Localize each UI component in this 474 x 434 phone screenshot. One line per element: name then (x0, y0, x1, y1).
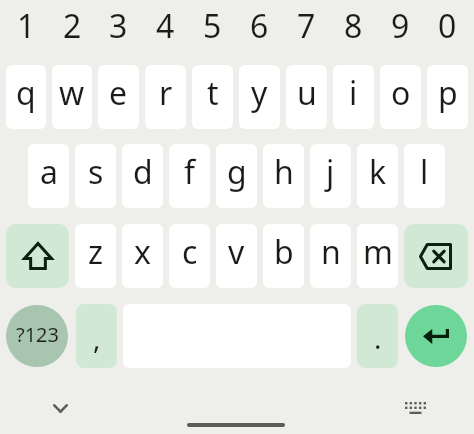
staticText: l (420, 150, 429, 194)
button[interactable]: x (122, 224, 163, 288)
button[interactable]: Hide keyboard (46, 393, 74, 424)
button[interactable]: m (357, 224, 398, 288)
staticText: 1 (17, 4, 36, 48)
button[interactable]: w (52, 65, 92, 129)
button[interactable]: g (216, 144, 257, 208)
staticText: w (59, 71, 85, 115)
button[interactable]: n (310, 224, 351, 288)
staticText: o (391, 71, 411, 115)
button[interactable]: b (263, 224, 304, 288)
staticText: 0 (438, 4, 457, 48)
button[interactable]: 0 (424, 0, 471, 52)
button[interactable]: q (6, 65, 46, 129)
staticText: v (228, 230, 245, 274)
button[interactable]: , (76, 304, 117, 368)
staticText: 4 (156, 4, 175, 48)
button[interactable]: k (357, 144, 398, 208)
button[interactable]: ?123 (6, 305, 68, 367)
button[interactable]: l (404, 144, 445, 208)
staticText: m (363, 230, 393, 274)
staticText: e (109, 71, 128, 115)
staticText: 8 (344, 4, 363, 48)
button[interactable]: t (192, 65, 233, 129)
staticText: 7 (297, 4, 316, 48)
staticText: c (182, 230, 198, 274)
staticText: , (93, 319, 101, 357)
button[interactable]: u (286, 65, 327, 129)
button[interactable]: v (216, 224, 257, 288)
button[interactable]: s (75, 144, 116, 208)
button[interactable]: e (98, 65, 139, 129)
button[interactable]: r (145, 65, 186, 129)
staticText: . (374, 319, 382, 357)
staticText: f (184, 150, 196, 194)
button[interactable]: o (380, 65, 421, 129)
staticText: t (207, 71, 219, 115)
staticText: x (134, 230, 151, 274)
staticText: i (349, 71, 358, 115)
button[interactable]: 5 (189, 0, 236, 52)
button[interactable]: Enter (405, 305, 467, 367)
button[interactable]: 1 (3, 0, 49, 52)
staticText: b (274, 230, 294, 274)
staticText: 2 (63, 4, 82, 48)
button[interactable]: 8 (330, 0, 377, 52)
staticText: k (369, 150, 387, 194)
button[interactable]: 6 (236, 0, 283, 52)
staticText: j (326, 150, 335, 194)
button[interactable]: Backspace (404, 224, 468, 288)
button[interactable]: h (263, 144, 304, 208)
staticText: ?123 (16, 321, 59, 348)
button[interactable]: z (75, 224, 116, 288)
staticText: h (274, 150, 294, 194)
button[interactable]: Switch input method (401, 392, 429, 423)
staticText: d (133, 150, 153, 194)
staticText: p (438, 71, 458, 115)
button[interactable]: 3 (95, 0, 142, 52)
button[interactable]: f (169, 144, 210, 208)
staticText: n (321, 230, 341, 274)
staticText: 3 (109, 4, 128, 48)
button[interactable]: 2 (49, 0, 95, 52)
button[interactable]: 9 (377, 0, 424, 52)
button[interactable]: d (122, 144, 163, 208)
staticText: 5 (203, 4, 222, 48)
button[interactable]: p (427, 65, 468, 129)
button[interactable]: i (333, 65, 374, 129)
button[interactable]: j (310, 144, 351, 208)
button[interactable]: y (239, 65, 280, 129)
staticText: z (88, 230, 104, 274)
staticText: 9 (391, 4, 410, 48)
staticText: u (297, 71, 317, 115)
button[interactable]: 7 (283, 0, 330, 52)
button[interactable]: 4 (142, 0, 189, 52)
staticText: a (40, 150, 58, 194)
button[interactable]: a (28, 144, 69, 208)
button[interactable]: Shift (6, 224, 69, 288)
staticText: g (227, 150, 247, 194)
staticText: r (159, 71, 173, 115)
staticText: 6 (250, 4, 269, 48)
staticText: y (251, 71, 268, 115)
button[interactable]: . (357, 304, 398, 368)
staticText: q (16, 71, 36, 115)
button[interactable]: c (169, 224, 210, 288)
staticText: s (88, 150, 104, 194)
